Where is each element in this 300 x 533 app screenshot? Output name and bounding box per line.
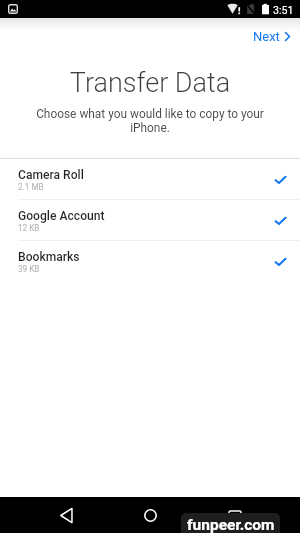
staticText: funpeer.com bbox=[187, 516, 275, 533]
button[interactable]: Camera Roll bbox=[0, 159, 300, 199]
button[interactable]: Home bbox=[132, 497, 168, 533]
button[interactable]: Back bbox=[48, 497, 84, 533]
staticText: Choose what you would like to copy to yo… bbox=[30, 107, 270, 135]
button[interactable]: Next bbox=[239, 26, 300, 48]
staticText: 2.1 MB bbox=[18, 182, 44, 192]
button[interactable]: Recents bbox=[217, 499, 253, 533]
staticText: Camera Roll bbox=[18, 168, 84, 182]
staticText: 12 KB bbox=[18, 223, 40, 233]
staticText: Next bbox=[253, 29, 280, 44]
button[interactable]: Google Account bbox=[0, 200, 300, 240]
staticText: Transfer Data bbox=[0, 67, 300, 99]
staticText: Bookmarks bbox=[18, 250, 80, 264]
staticText: Google Account bbox=[18, 209, 105, 223]
button[interactable]: Bookmarks bbox=[0, 241, 300, 281]
staticText: 39 KB bbox=[18, 264, 40, 274]
staticText: 3:51 bbox=[273, 4, 294, 16]
